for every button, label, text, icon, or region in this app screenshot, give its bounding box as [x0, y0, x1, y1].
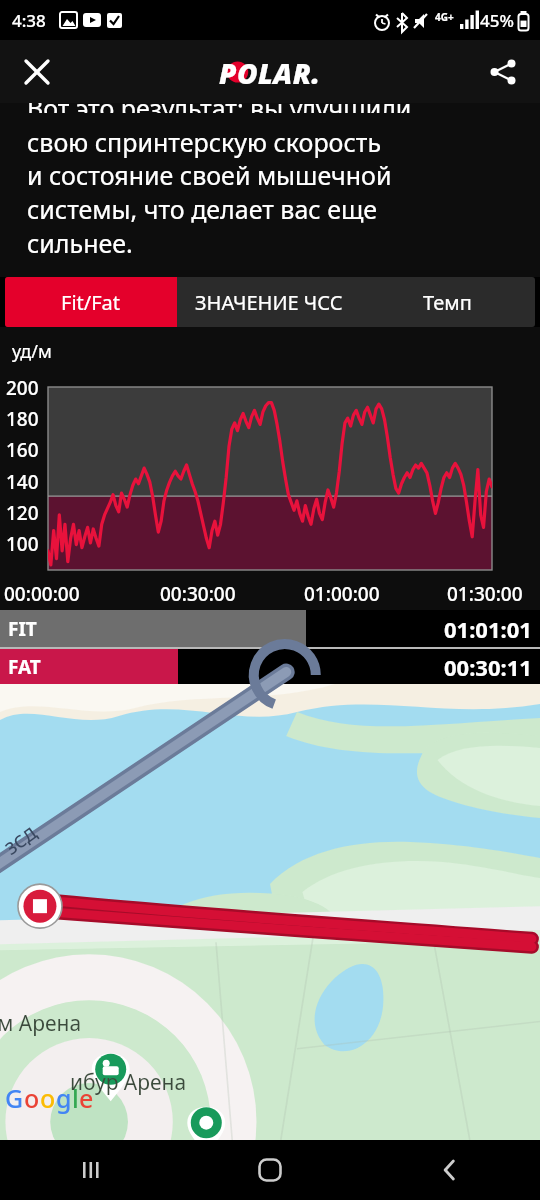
staticText: 4G+ [435, 10, 454, 24]
button[interactable]: Back [360, 1140, 540, 1200]
button[interactable]: Recent apps [0, 1140, 180, 1200]
staticText: 120 [6, 500, 39, 526]
staticText: POLAR. [219, 54, 321, 90]
staticText: o [40, 1081, 56, 1115]
staticText: G [5, 1081, 24, 1115]
staticText: Вот это результат: вы улучшили [27, 103, 412, 113]
button[interactable]: Fit/Fat [5, 277, 177, 327]
staticText: ром Арена [0, 1009, 82, 1038]
button[interactable]: ЗНАЧЕНИЕ ЧСС [177, 277, 360, 327]
staticText: 01:30:00 [447, 581, 523, 607]
staticText: FAT [8, 654, 41, 680]
staticText: уд/м [12, 339, 52, 364]
button[interactable]: FIT [0, 610, 540, 647]
staticText: Темп [423, 289, 472, 316]
button[interactable]: Темп [360, 277, 535, 327]
staticText: o [24, 1081, 40, 1115]
staticText: ЗНАЧЕНИЕ ЧСС [195, 289, 343, 316]
staticText: 100 [6, 531, 39, 557]
button[interactable]: ЗСД [0, 684, 540, 1140]
staticText: e [79, 1081, 94, 1115]
staticText: 180 [6, 406, 39, 432]
staticText: 4:38 [12, 9, 46, 32]
button[interactable]: FAT [0, 649, 540, 684]
button[interactable]: Home [180, 1140, 360, 1200]
staticText: 160 [6, 437, 39, 463]
staticText: 01:01:01 [444, 614, 532, 644]
staticText: g [56, 1081, 72, 1115]
staticText: 00:30:00 [160, 581, 236, 607]
staticText: l [72, 1081, 79, 1115]
button[interactable]: Close [14, 49, 60, 95]
staticText: 00:30:11 [444, 652, 532, 682]
staticText: ибур Арена [70, 1068, 187, 1097]
button[interactable]: Share [480, 49, 526, 95]
staticText: свою спринтерскую скорость и состояние с… [27, 125, 392, 261]
staticText: 01:00:00 [304, 581, 380, 607]
staticText: 200 [6, 375, 39, 401]
staticText: Fit/Fat [61, 289, 121, 316]
staticText: 140 [6, 469, 39, 495]
staticText: ЗСД [0, 821, 41, 860]
staticText: 00:00:00 [4, 581, 80, 607]
staticText: FIT [8, 616, 37, 642]
staticText: 45% [480, 9, 514, 32]
